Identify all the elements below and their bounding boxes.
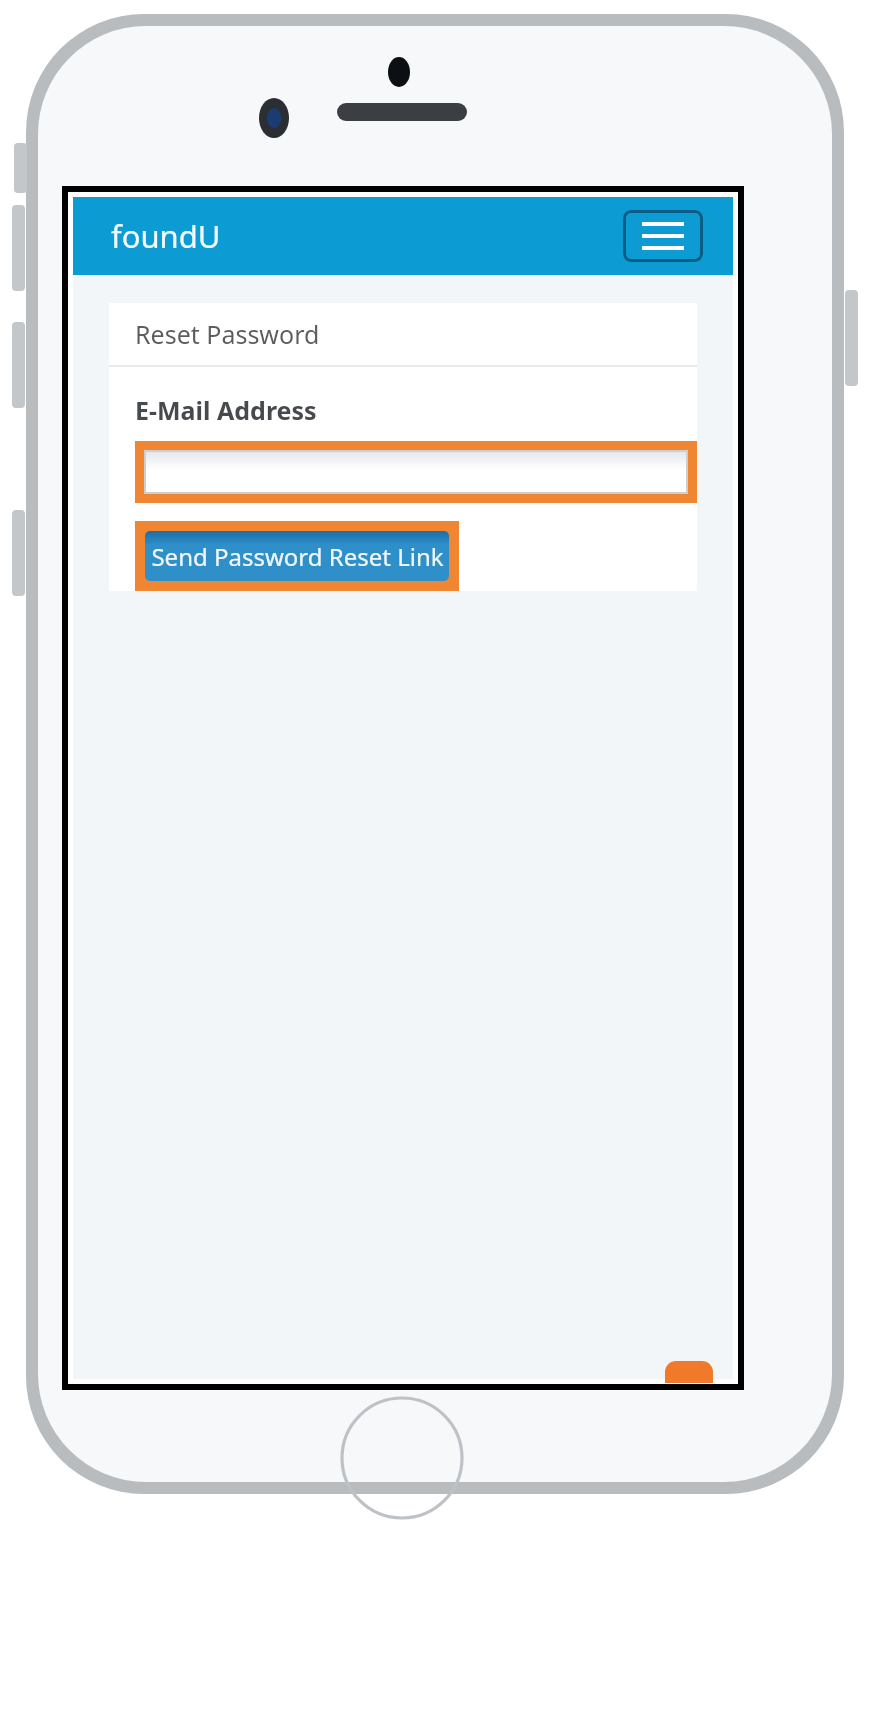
staticText: E-Mail Address	[135, 393, 317, 427]
button[interactable]: foundU	[111, 215, 221, 257]
button[interactable]: Open navigation menu	[623, 210, 703, 262]
button[interactable]: Send Password Reset Link	[145, 531, 449, 581]
staticText: Reset Password	[135, 317, 320, 351]
staticText: Send Password Reset Link	[151, 540, 444, 573]
button[interactable]	[144, 450, 688, 494]
